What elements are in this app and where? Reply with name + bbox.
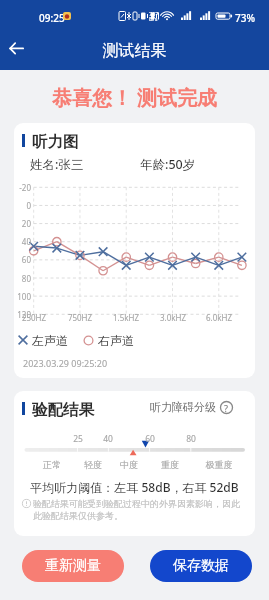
staticText: 6.0kHZ [199,312,239,323]
staticText: ? [224,402,229,414]
staticText: 右声道 [98,333,134,348]
staticText: 平均听力阈值：左耳 58dB，右耳 52dB [14,479,255,495]
staticText: 恭喜您！ 测试完成 [0,84,269,111]
staticText: 100 [14,291,31,302]
staticText: 重度 [150,459,190,470]
staticText: 保存数据 [173,557,229,575]
staticText: 验配结果可能受到验配过程中的外界因素影响，因此此验配结果仅供参考。 [33,498,245,521]
staticText: 750HZ [60,312,100,323]
staticText: 40 [93,433,123,445]
staticText: 757 [149,10,159,17]
button[interactable]: 重新测量 [22,550,124,582]
staticText: -20 [14,182,31,193]
staticText: 40 [14,236,31,247]
staticText: 中度 [109,459,149,470]
staticText: 250HZ [14,312,54,323]
staticText: 20 [14,218,31,229]
staticText: 姓名:张三 [30,156,84,173]
staticText: 听力图 [32,132,79,152]
staticText: 09:25 [39,11,65,25]
button[interactable]: Back [3,35,30,62]
staticText: B/s [149,15,158,22]
staticText: 测试结果 [0,41,269,61]
staticText: 80 [176,433,206,445]
staticText: 听力障碍分级 [150,400,216,414]
staticText: 左声道 [32,333,68,348]
staticText: 60 [14,254,31,265]
staticText: 极重度 [199,459,239,470]
staticText: 轻度 [73,459,113,470]
staticText: 60 [135,433,165,445]
staticText: 正常 [32,459,72,470]
staticText: 73% [235,11,255,25]
staticText: 80 [14,273,31,284]
staticText: 重新测量 [45,557,101,575]
button[interactable]: 保存数据 [150,550,252,582]
staticText: 1.5kHZ [106,312,146,323]
staticText: 验配结果 [32,400,94,420]
staticText: 3.0kHZ [153,312,193,323]
button[interactable]: 听力障碍分级 [150,400,233,414]
staticText: 年龄:50岁 [140,156,196,173]
staticText: 0 [14,200,31,211]
staticText: 25 [63,433,93,445]
staticText: 120 [14,309,31,320]
staticText: 2023.03.29 09:25:20 [23,357,108,369]
